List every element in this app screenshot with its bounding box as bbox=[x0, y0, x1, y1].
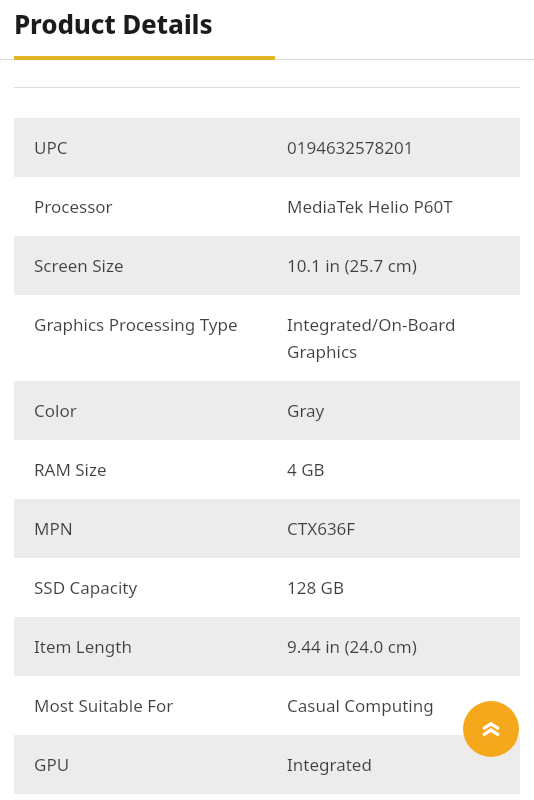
button[interactable]: Graphics Processing Type bbox=[14, 295, 520, 381]
staticText: Integrated bbox=[287, 753, 508, 776]
staticText: SSD Capacity bbox=[34, 576, 287, 599]
staticText: Screen Size bbox=[34, 254, 287, 277]
staticText: Product Details bbox=[14, 6, 213, 41]
button[interactable]: UPC bbox=[14, 118, 520, 177]
staticText: UPC bbox=[34, 136, 287, 159]
button[interactable]: Most Suitable For bbox=[14, 676, 520, 735]
staticText: Graphics Processing Type bbox=[34, 313, 287, 336]
button[interactable]: Item Length bbox=[14, 617, 520, 676]
staticText: Integrated/On-Board Graphics bbox=[287, 313, 508, 363]
staticText: 4 GB bbox=[287, 458, 508, 481]
staticText: MediaTek Helio P60T bbox=[287, 195, 508, 218]
staticText: Most Suitable For bbox=[34, 694, 287, 717]
button[interactable]: RAM Size bbox=[14, 440, 520, 499]
button[interactable]: GPU bbox=[14, 735, 520, 794]
staticText: 128 GB bbox=[287, 576, 508, 599]
staticText: Color bbox=[34, 399, 287, 422]
staticText: Casual Computing bbox=[287, 694, 508, 717]
staticText: 0194632578201 bbox=[287, 136, 508, 159]
button[interactable]: MPN bbox=[14, 499, 520, 558]
button[interactable]: Screen Size bbox=[14, 236, 520, 295]
staticText: Item Length bbox=[34, 635, 287, 658]
button[interactable]: Scroll to top bbox=[463, 701, 519, 757]
staticText: RAM Size bbox=[34, 458, 287, 481]
staticText: GPU bbox=[34, 753, 287, 776]
button[interactable]: SSD Capacity bbox=[14, 558, 520, 617]
staticText: Gray bbox=[287, 399, 508, 422]
button[interactable]: Processor bbox=[14, 177, 520, 236]
staticText: MPN bbox=[34, 517, 287, 540]
button[interactable]: Color bbox=[14, 381, 520, 440]
staticText: CTX636F bbox=[287, 517, 508, 540]
staticText: Processor bbox=[34, 195, 287, 218]
staticText: 10.1 in (25.7 cm) bbox=[287, 254, 508, 277]
staticText: 9.44 in (24.0 cm) bbox=[287, 635, 508, 658]
